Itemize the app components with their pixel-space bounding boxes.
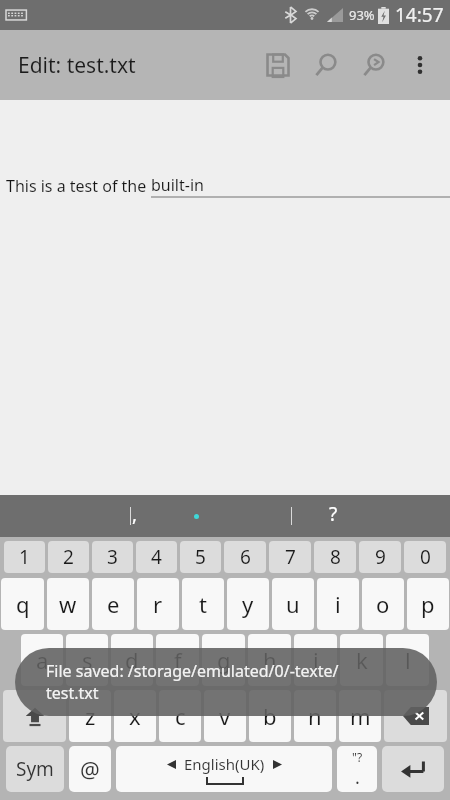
button[interactable]: p — [407, 578, 449, 630]
staticText: q — [16, 589, 30, 619]
button[interactable]: w — [47, 578, 89, 630]
staticText: t — [199, 589, 207, 619]
staticText: English(UK) — [184, 754, 265, 774]
staticText: c — [175, 701, 186, 731]
staticText: @ — [80, 754, 100, 784]
button[interactable]: h — [248, 634, 291, 686]
staticText: 3 — [107, 544, 118, 570]
staticText: m — [350, 701, 371, 731]
button[interactable]: d — [111, 634, 153, 686]
button[interactable]: Backspace — [384, 690, 447, 742]
staticText: y — [242, 589, 254, 619]
staticText: h — [263, 645, 277, 675]
button[interactable]: 7 — [269, 541, 311, 573]
staticText: 1 — [19, 544, 30, 570]
staticText: 2 — [63, 544, 74, 570]
button[interactable]: Find next — [350, 41, 398, 89]
staticText: d — [125, 645, 139, 675]
button[interactable]: Sym — [6, 746, 64, 792]
staticText: 6 — [240, 544, 251, 570]
staticText: built-in — [151, 174, 204, 196]
staticText: e — [107, 589, 120, 619]
button[interactable]: b — [249, 690, 291, 742]
staticText: Edit: test.txt — [18, 51, 136, 80]
staticText: "? — [352, 749, 363, 765]
staticText: 9 — [375, 544, 386, 570]
staticText: 5 — [195, 544, 206, 570]
staticText: o — [376, 589, 390, 619]
staticText: . — [355, 765, 360, 790]
staticText: , — [132, 501, 138, 527]
button[interactable]: Enter — [382, 746, 444, 792]
staticText: 0 — [420, 544, 431, 570]
staticText: 93% — [349, 6, 375, 24]
button[interactable]: y — [227, 578, 269, 630]
staticText: 4 — [151, 544, 162, 570]
button[interactable]: i — [317, 578, 359, 630]
staticText: x — [129, 701, 141, 731]
button[interactable]: j — [294, 634, 337, 686]
staticText: j — [313, 645, 319, 675]
button[interactable]: m — [339, 690, 381, 742]
staticText: k — [356, 645, 368, 675]
staticText: 7 — [285, 544, 296, 570]
button[interactable]: 1 — [4, 541, 45, 573]
staticText: 14:57 — [395, 2, 444, 28]
button[interactable]: Search — [302, 41, 350, 89]
staticText: ? — [329, 501, 338, 527]
staticText: s — [82, 645, 93, 675]
button[interactable]: More options — [398, 43, 442, 87]
button[interactable]: 9 — [359, 541, 401, 573]
button[interactable]: 2 — [48, 541, 89, 573]
button[interactable]: e — [92, 578, 134, 630]
button[interactable]: a — [21, 634, 63, 686]
button[interactable]: n — [294, 690, 336, 742]
button[interactable]: 0 — [404, 541, 446, 573]
button[interactable]: 3 — [92, 541, 133, 573]
staticText: f — [174, 645, 182, 675]
button[interactable]: 5 — [180, 541, 221, 573]
button[interactable]: Space, English (UK) — [116, 746, 332, 792]
staticText: n — [308, 701, 322, 731]
button[interactable]: 6 — [224, 541, 266, 573]
button[interactable]: 8 — [314, 541, 356, 573]
staticText: z — [85, 701, 96, 731]
button[interactable]: u — [272, 578, 314, 630]
button[interactable]: Emoji and voice input — [69, 746, 111, 792]
button[interactable]: s — [66, 634, 108, 686]
button[interactable]: v — [204, 690, 246, 742]
staticText: a — [36, 645, 49, 675]
staticText: test.txt — [46, 682, 99, 704]
staticText: g — [217, 645, 231, 675]
staticText: u — [286, 589, 300, 619]
staticText: v — [219, 701, 231, 731]
staticText: This is a test of the — [6, 175, 151, 197]
button[interactable]: t — [182, 578, 224, 630]
button[interactable]: g — [202, 634, 245, 686]
button[interactable]: l — [386, 634, 429, 686]
button[interactable]: Save — [254, 41, 302, 89]
button[interactable]: f — [156, 634, 199, 686]
staticText: Sym — [16, 756, 54, 782]
staticText: 8 — [330, 544, 341, 570]
staticText: i — [335, 589, 341, 619]
staticText: File saved: /storage/emulated/0/-texte/ — [46, 660, 339, 682]
button[interactable]: k — [340, 634, 383, 686]
button[interactable]: c — [159, 690, 201, 742]
button[interactable]: Shift — [3, 690, 66, 742]
staticText: r — [153, 589, 163, 619]
button[interactable]: z — [69, 690, 111, 742]
button[interactable]: o — [362, 578, 404, 630]
staticText: b — [263, 701, 277, 731]
staticText: l — [405, 645, 411, 675]
staticText: w — [59, 589, 77, 619]
button[interactable]: r — [137, 578, 179, 630]
button[interactable]: 4 — [136, 541, 177, 573]
button[interactable]: q — [1, 578, 44, 630]
button[interactable]: x — [114, 690, 156, 742]
button[interactable]: Period and punctuation — [337, 746, 377, 792]
staticText: p — [421, 589, 435, 619]
